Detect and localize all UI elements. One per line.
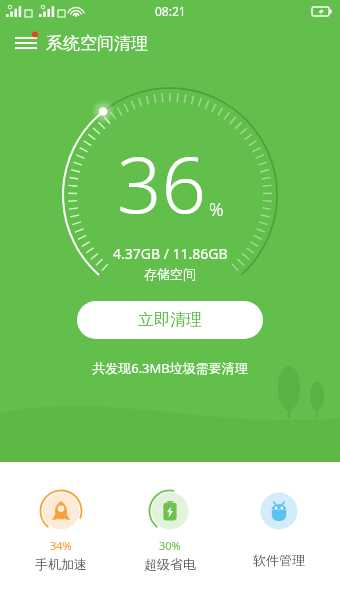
staticText: 36 xyxy=(117,130,207,236)
staticText: 系统空间清理 xyxy=(46,33,148,54)
staticText: 08:21 xyxy=(155,3,186,19)
staticText: 共发现6.3MB垃圾需要清理 xyxy=(0,359,340,377)
staticText: 4.37GB / 11.86GB xyxy=(113,244,228,263)
staticText: 立即清理 xyxy=(138,310,202,330)
staticText: 软件管理 xyxy=(253,552,305,568)
staticText: 超级省电 xyxy=(144,556,196,572)
staticText: 34% xyxy=(50,538,72,553)
button[interactable]: 立即清理 xyxy=(77,301,263,339)
staticText: % xyxy=(209,197,224,222)
staticText: 存储空间 xyxy=(144,266,196,282)
staticText: 手机加速 xyxy=(35,556,87,572)
button[interactable]: 菜单 xyxy=(8,25,44,61)
button[interactable]: 30% xyxy=(122,487,218,574)
button[interactable]: 34% xyxy=(13,487,109,574)
staticText: 30% xyxy=(159,538,181,553)
button[interactable]: 软件管理 xyxy=(231,487,327,570)
